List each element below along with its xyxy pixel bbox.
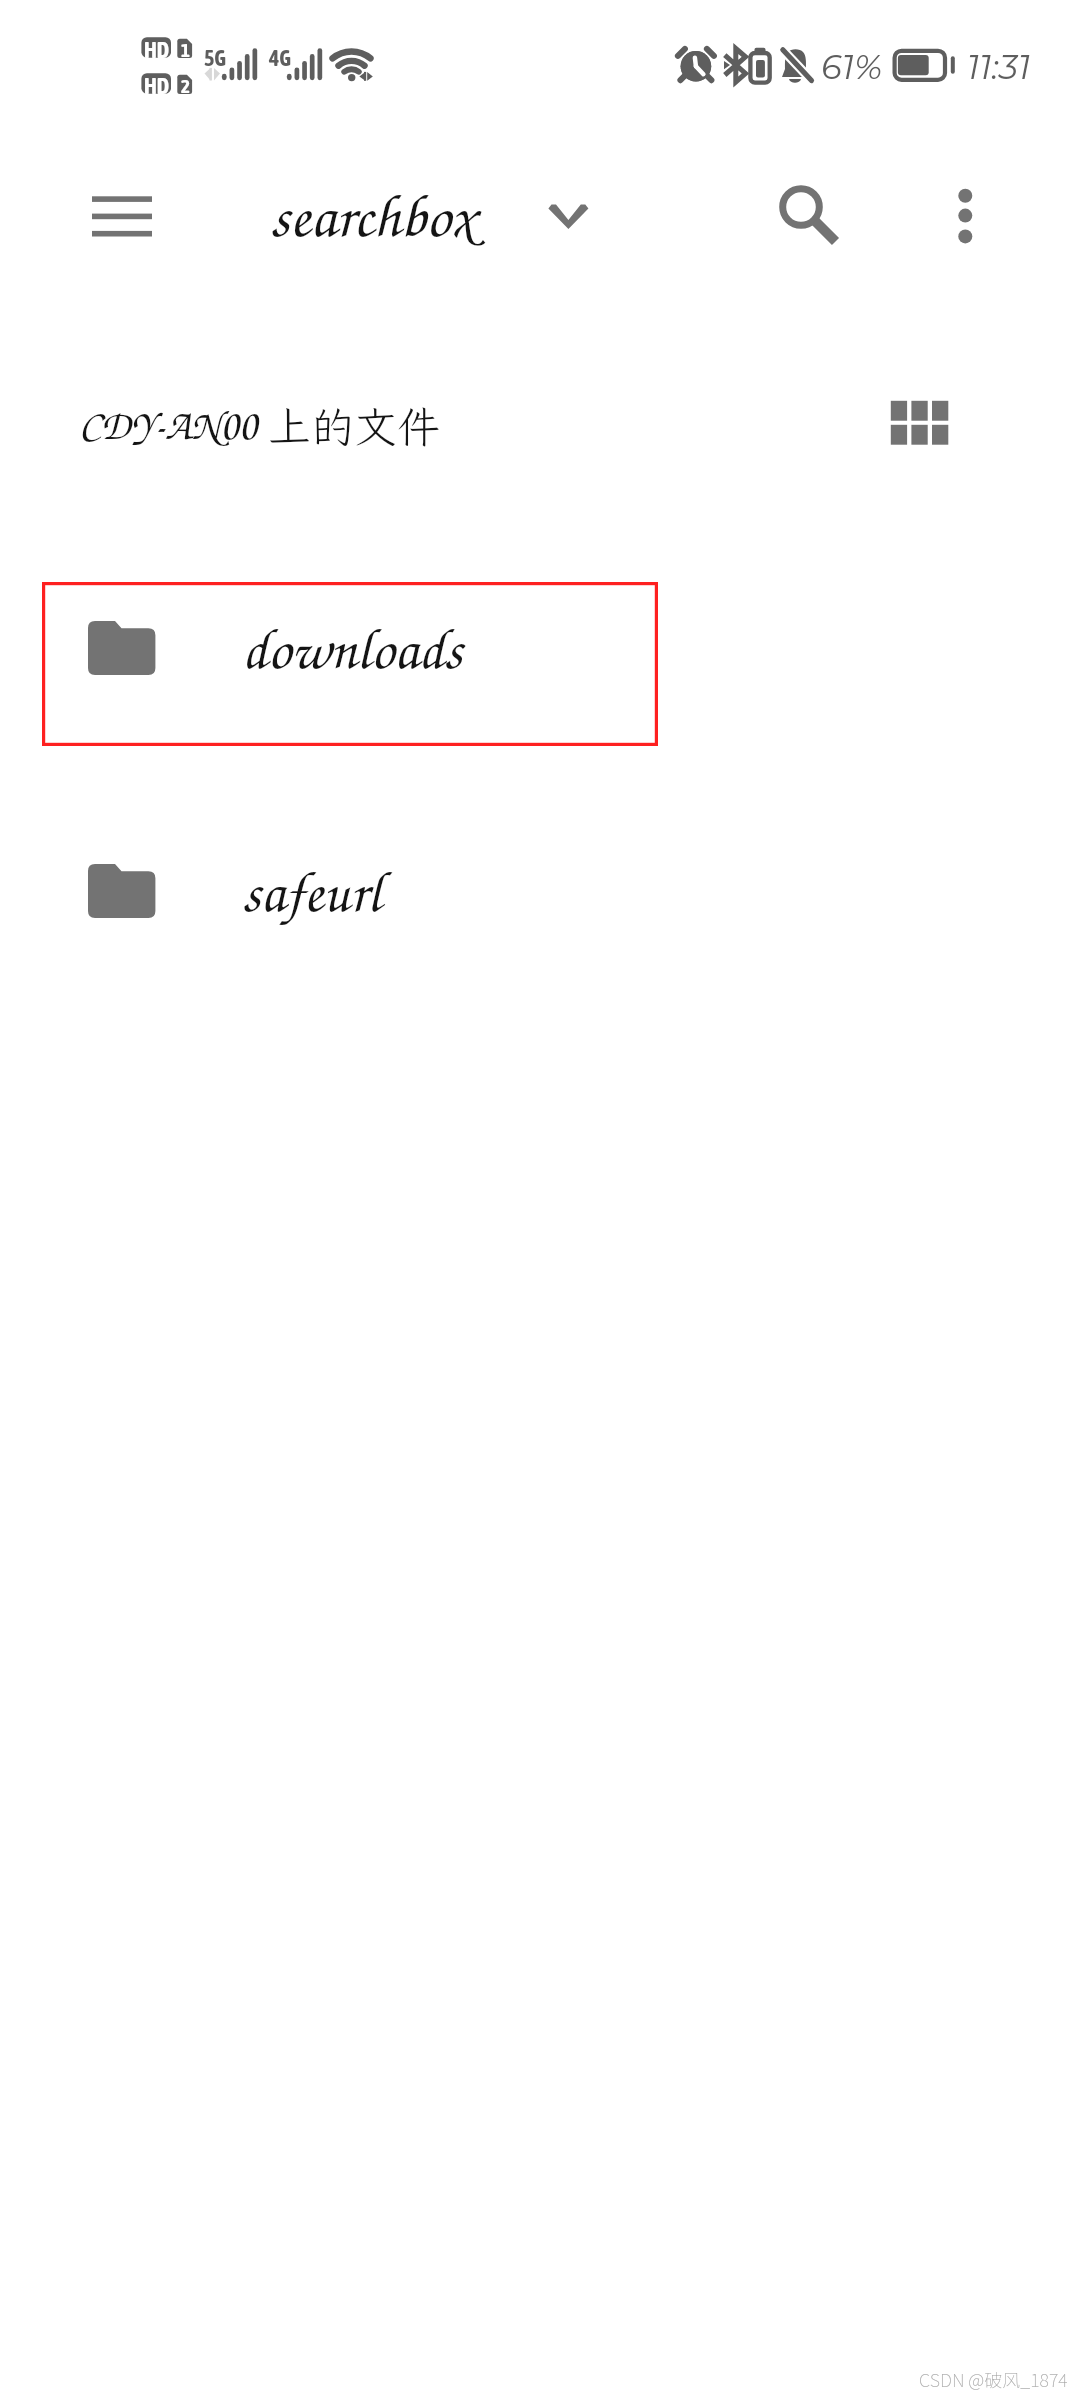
staticText: downloads xyxy=(242,608,463,684)
staticText: 2 xyxy=(181,75,190,97)
staticText: 5G xyxy=(204,45,227,70)
button[interactable]: More options xyxy=(925,166,1005,258)
staticText: 4G xyxy=(269,45,292,70)
staticText: 上的文件 xyxy=(268,398,440,455)
staticText: safeurl xyxy=(242,851,382,927)
staticText: HD xyxy=(144,73,170,98)
staticText: 61% xyxy=(821,46,883,87)
button[interactable]: Navigation menu xyxy=(62,166,182,266)
staticText: 1 xyxy=(181,39,190,61)
staticText: 11:31 xyxy=(967,46,1031,87)
staticText: HD xyxy=(144,37,170,62)
button[interactable]: Search xyxy=(756,162,852,258)
staticText: CSDN @破风_1874 xyxy=(919,2366,1068,2392)
staticText: searchbox xyxy=(270,173,476,253)
staticText: CDY-AN00 xyxy=(79,396,258,451)
button[interactable]: safeurl xyxy=(0,825,1080,989)
button[interactable]: searchbox xyxy=(260,170,600,262)
button[interactable]: Switch to grid view xyxy=(865,376,975,468)
button[interactable]: downloads xyxy=(0,582,1080,746)
